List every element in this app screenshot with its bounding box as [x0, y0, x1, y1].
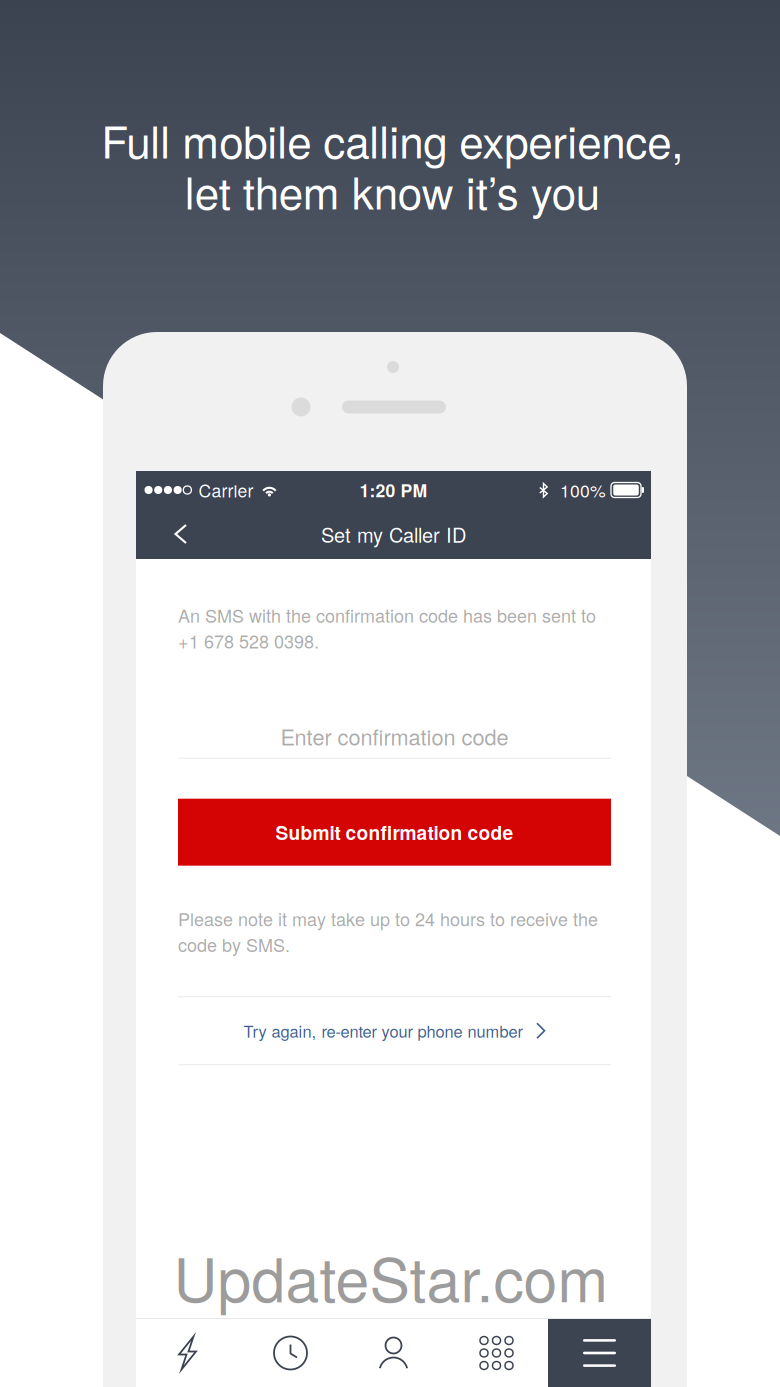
staticText: UpdateStar.com [173, 1233, 608, 1319]
staticText: 100% [560, 477, 606, 503]
button[interactable]: Back [136, 509, 209, 559]
staticText: Submit confirmation code [275, 818, 513, 846]
button[interactable]: Menu [548, 1319, 651, 1387]
staticText: Try again, re-enter your phone number [243, 1019, 522, 1042]
button[interactable]: Try again, re-enter your phone number [178, 997, 611, 1064]
button[interactable]: Quick dial [136, 1319, 239, 1387]
staticText: An SMS with the confirmation code has be… [178, 602, 596, 654]
button[interactable]: Contacts [342, 1319, 445, 1387]
staticText: Full mobile calling experience, let them… [101, 108, 683, 222]
staticText: Set my Caller ID [321, 520, 466, 548]
staticText: Please note it may take up to 24 hours t… [178, 906, 598, 957]
staticText: 1:20 PM [359, 477, 427, 503]
button[interactable]: Keypad [445, 1319, 548, 1387]
staticText: Carrier [198, 477, 253, 503]
staticText: Enter confirmation code [280, 721, 508, 752]
button[interactable]: Submit confirmation code [178, 799, 611, 866]
button[interactable]: Recents [239, 1319, 342, 1387]
